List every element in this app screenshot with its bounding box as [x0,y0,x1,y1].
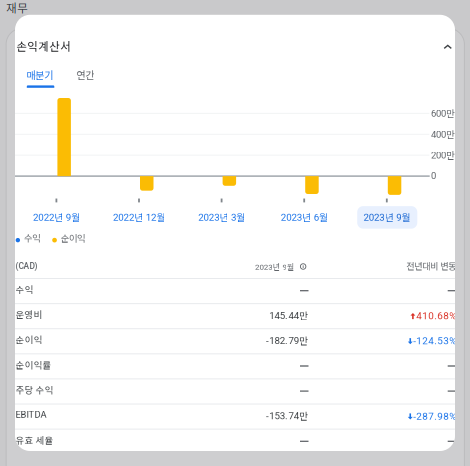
staticText: 유효 세율 [16,433,54,446]
staticText: EBITDA [16,409,47,420]
staticText: 재무 [6,0,28,16]
button[interactable]: 유효 세율 [15,429,455,454]
staticText: 매분기 [26,67,53,82]
staticText: 순이익 [61,231,85,244]
staticText: 2022년 9월 [33,210,80,224]
button[interactable]: EBITDA [15,404,455,429]
staticText: 2023년 9월 [363,210,411,224]
button[interactable]: 매분기 [15,15,75,35]
button[interactable]: 운영비 [15,304,455,329]
staticText: -287.98% [413,410,456,422]
staticText: 운영비 [16,307,43,321]
staticText: 2023년 3월 [198,210,245,224]
staticText: 2022년 12월 [113,210,165,224]
button[interactable]: 2023년 6월 [15,15,105,35]
staticText: 손익계산서 [16,37,71,54]
button[interactable]: 연간 [15,15,75,35]
button[interactable]: 2023년 9월 [15,15,105,35]
staticText: 순이익률 [16,358,52,371]
staticText: -124.53% [413,335,456,347]
staticText: 200만 [431,148,455,162]
staticText: 연간 [76,67,94,82]
staticText: 400만 [431,127,455,141]
staticText: 수익 [24,231,40,244]
staticText: 2023년 9월 [255,261,294,272]
staticText: 주당 수익 [16,383,54,396]
staticText: 전년대비 변동 [406,259,456,272]
button[interactable]: 순이익 [15,329,455,354]
button[interactable]: 수익 [15,278,455,304]
staticText: 수익 [16,282,34,296]
button[interactable]: Collapse 손익계산서 [15,15,455,451]
staticText: 145.44만 [269,308,308,322]
staticText: 0 [431,170,436,181]
staticText: -182.79만 [266,333,308,347]
button[interactable]: 순이익률 [15,354,455,379]
button[interactable]: 2023년 3월 [15,15,105,35]
button[interactable]: 2022년 9월 [15,15,105,35]
staticText: (CAD) [15,261,37,271]
staticText: -153.74만 [266,409,308,423]
button[interactable]: 손익계산서 [15,15,145,35]
staticText: 410.68% [416,310,456,322]
button[interactable]: 주당 수익 [15,379,455,404]
staticText: 600만 [431,106,455,120]
staticText: 2023년 6월 [281,210,328,224]
button[interactable]: 2022년 12월 [15,15,105,35]
staticText: 순이익 [16,333,43,346]
